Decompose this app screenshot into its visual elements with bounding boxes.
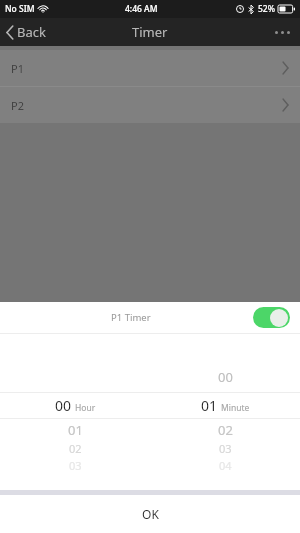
staticText: No SIM (5, 3, 35, 15)
staticText: 03 (69, 458, 82, 473)
button[interactable]: Back (0, 19, 56, 45)
staticText: 01 (201, 396, 218, 415)
staticText: 01 (68, 421, 83, 439)
staticText: 52% (258, 3, 275, 15)
button[interactable]: 00 (0, 393, 300, 418)
staticText: 00 (55, 396, 72, 415)
staticText: P2 (11, 98, 24, 113)
staticText: 02 (218, 421, 233, 439)
button[interactable]: P2 (0, 87, 300, 123)
staticText: P1 Timer (111, 311, 151, 324)
other: P1 Timer toggle (253, 307, 290, 328)
staticText: OK (142, 506, 159, 522)
button[interactable]: More options (265, 23, 300, 42)
button[interactable]: OK (0, 495, 300, 533)
staticText: Minute (221, 402, 250, 414)
staticText: 03 (219, 441, 232, 456)
staticText: 00 (218, 368, 233, 386)
staticText: Back (17, 23, 46, 41)
button[interactable]: P1 Timer (0, 302, 300, 333)
staticText: Timer (132, 23, 168, 41)
staticText: 4:46 AM (125, 3, 158, 15)
staticText: 02 (69, 441, 82, 456)
staticText: Hour (75, 402, 96, 414)
staticText: P1 (11, 61, 24, 76)
staticText: 04 (219, 458, 232, 473)
